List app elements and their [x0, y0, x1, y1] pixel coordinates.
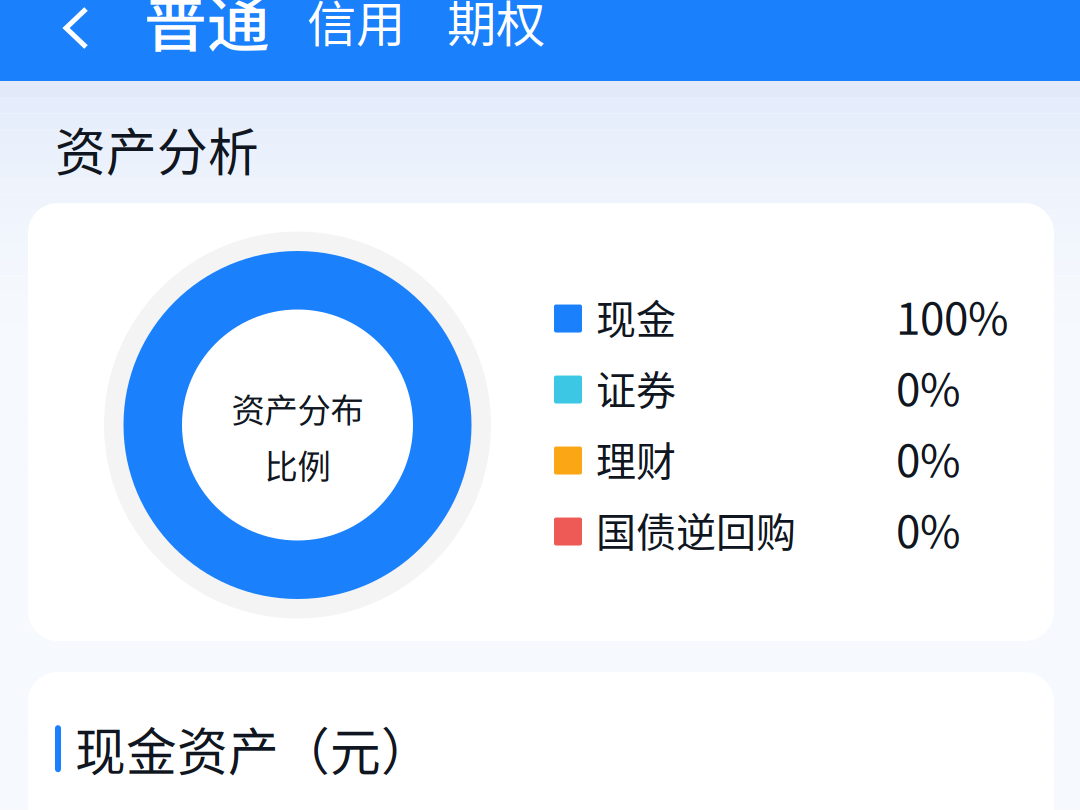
staticText: 0% — [896, 355, 961, 418]
staticText: 100% — [896, 284, 1009, 347]
button[interactable]: 返回 — [0, 0, 110, 81]
staticText: 资产分析 — [55, 112, 259, 186]
staticText: 现金 — [596, 287, 676, 345]
button[interactable]: 普通 — [110, 0, 289, 81]
button[interactable]: 信用 — [289, 0, 426, 81]
staticText: 现金资产（元） — [75, 712, 432, 785]
button[interactable]: 期权 — [426, 0, 569, 81]
staticText: 0% — [896, 426, 961, 489]
staticText: 期权 — [447, 0, 545, 56]
staticText: 理财 — [596, 429, 676, 487]
staticText: 信用 — [307, 0, 405, 56]
staticText: 国债逆回购 — [596, 500, 796, 558]
staticText: 普通 — [144, 0, 270, 64]
staticText: 0% — [896, 497, 961, 560]
staticText: 比例 — [264, 440, 330, 488]
staticText: 证券 — [596, 358, 676, 416]
staticText: 资产分布 — [231, 384, 363, 432]
